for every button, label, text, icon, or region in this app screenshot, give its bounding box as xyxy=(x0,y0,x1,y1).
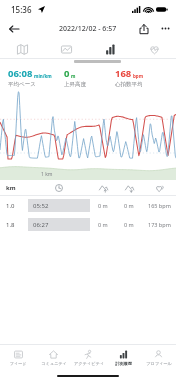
button[interactable]: Map xyxy=(0,39,44,59)
staticText: 06:08 xyxy=(8,67,33,80)
staticText: 1 km xyxy=(41,171,53,178)
staticText: 05:52 xyxy=(33,202,49,210)
button[interactable]: フィード xyxy=(0,345,36,371)
staticText: 0 m xyxy=(124,221,134,228)
staticText: フィード xyxy=(9,361,27,366)
button[interactable]: Back xyxy=(4,19,24,39)
staticText: 0 xyxy=(64,67,70,80)
staticText: 15:36 xyxy=(11,4,32,15)
button[interactable]: アクティビティ xyxy=(71,345,106,371)
staticText: 1.8 xyxy=(6,221,28,229)
button[interactable]: Splits xyxy=(88,39,132,59)
staticText: 168 xyxy=(115,67,132,80)
staticText: 0 m xyxy=(124,202,134,209)
staticText: 1.0 xyxy=(6,202,28,210)
button[interactable]: コミュニティ xyxy=(36,345,71,371)
button[interactable]: Share xyxy=(134,19,154,39)
staticText: bpm xyxy=(133,73,144,79)
staticText: km xyxy=(6,184,28,192)
staticText: 2022/12/02 - 6:57 xyxy=(59,24,117,34)
button[interactable]: 1.0 xyxy=(0,196,176,215)
staticText: m xyxy=(71,73,76,79)
button[interactable]: More options xyxy=(154,18,176,39)
staticText: 173 bpm xyxy=(148,221,171,228)
staticText: アクティビティ xyxy=(74,361,104,366)
staticText: 計測履歴 xyxy=(115,361,132,366)
staticText: 0 m xyxy=(98,202,108,209)
staticText: 06:27 xyxy=(33,221,49,229)
staticText: 上昇高度 xyxy=(64,81,86,88)
staticText: 165 bpm xyxy=(148,202,171,209)
staticText: 心拍数平均 xyxy=(115,81,143,88)
staticText: 0 m xyxy=(98,221,108,228)
button[interactable]: Heart rate xyxy=(132,39,176,59)
staticText: min/km xyxy=(34,73,52,79)
button[interactable]: Graph xyxy=(44,39,88,59)
staticText: 平均ペース xyxy=(8,81,36,88)
staticText: コミュニティ xyxy=(41,361,67,366)
button[interactable]: 1.8 xyxy=(0,215,176,234)
button[interactable]: プロフィール xyxy=(141,345,176,371)
button[interactable]: 計測履歴 xyxy=(106,345,141,371)
staticText: プロフィール xyxy=(146,361,172,366)
